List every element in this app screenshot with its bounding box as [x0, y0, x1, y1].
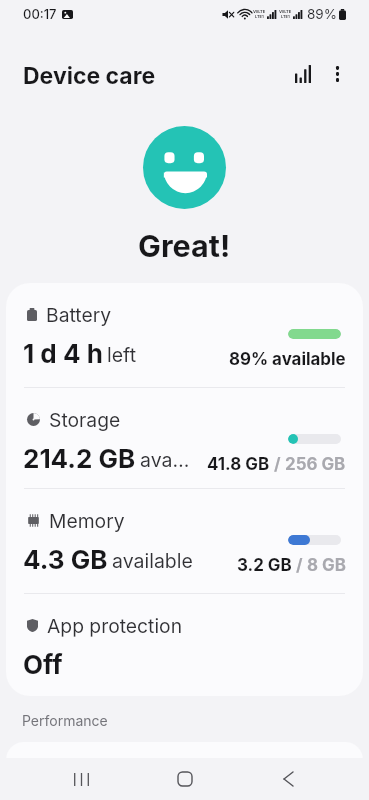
button[interactable]: Recents	[58, 758, 104, 800]
button[interactable]: More options	[320, 55, 358, 93]
staticText: Storage	[49, 408, 121, 431]
staticText: Memory	[49, 509, 125, 532]
staticText: LTE1	[255, 14, 264, 19]
staticText: 3.2 GB	[237, 555, 292, 575]
button[interactable]: Memory	[6, 489, 363, 593]
staticText: Battery	[46, 303, 112, 326]
staticText: 256 GB	[285, 454, 346, 474]
staticText: 1 d 4 h	[23, 338, 103, 369]
button[interactable]: Back	[265, 758, 311, 800]
staticText: App protection	[47, 614, 183, 637]
staticText: /	[270, 454, 285, 474]
staticText: Off	[23, 649, 63, 680]
staticText: VoLTE	[253, 9, 266, 14]
staticText: ava…	[140, 448, 190, 472]
staticText: 8 GB	[307, 555, 346, 575]
staticText: 89%	[307, 6, 337, 22]
staticText: 4.3 GB	[23, 544, 108, 575]
staticText: 214.2 GB	[23, 443, 136, 474]
staticText: 41.8 GB	[207, 454, 270, 474]
button[interactable]: Storage	[6, 388, 363, 488]
staticText: 89% available	[229, 349, 346, 369]
staticText: /	[292, 555, 307, 575]
staticText: left	[107, 343, 137, 367]
button[interactable]: Usage statistics	[282, 55, 320, 93]
staticText: LTE1	[281, 14, 290, 19]
staticText: Great!	[138, 227, 231, 264]
button[interactable]: Home	[162, 758, 208, 800]
staticText: available	[112, 549, 193, 573]
staticText: 00:17	[23, 6, 57, 22]
button[interactable]: Battery	[6, 283, 363, 387]
staticText: Device care	[23, 62, 156, 90]
staticText: Performance	[22, 712, 108, 729]
staticText: VoLTE	[279, 9, 292, 14]
button[interactable]: App protection	[6, 594, 363, 696]
